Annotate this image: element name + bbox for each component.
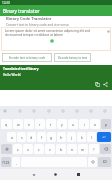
staticText: n (71, 147, 74, 152)
staticText: 12:30 (2, 1, 10, 5)
button[interactable]: tool5 (73, 107, 81, 115)
button[interactable]: tool1 (16, 107, 24, 115)
button[interactable]: Decode binary to text (54, 53, 91, 62)
button[interactable]: c (34, 144, 44, 154)
button[interactable]: l (87, 132, 96, 142)
staticText: d (30, 135, 33, 140)
button[interactable] (1, 144, 12, 154)
button[interactable]: tool6 (87, 107, 95, 115)
staticText: q (5, 122, 8, 127)
button[interactable]: p (101, 119, 111, 129)
button[interactable]: ? (89, 144, 99, 154)
button[interactable]: o (90, 119, 100, 129)
staticText: u (72, 122, 75, 127)
button[interactable]: i (79, 119, 89, 129)
button[interactable]: s (17, 132, 26, 142)
button[interactable]: tool3 (45, 107, 53, 115)
staticText: w (17, 122, 20, 127)
button[interactable]: , (12, 157, 20, 167)
staticText: Encode text to binary code (9, 56, 46, 60)
staticText: r (39, 122, 41, 127)
button[interactable]: v (45, 144, 55, 154)
button[interactable]: y (57, 119, 67, 129)
staticText: , (16, 160, 17, 165)
button[interactable]: Encode text to binary code (2, 53, 52, 62)
button[interactable]: Share (102, 81, 108, 87)
button[interactable]: Recents (73, 169, 84, 180)
button[interactable]: tool7 (101, 107, 109, 115)
button[interactable]: a (7, 132, 16, 142)
staticText: m (81, 147, 85, 152)
staticText: Hello World (3, 73, 21, 77)
button[interactable]: f (37, 132, 46, 142)
button[interactable]: g (47, 132, 56, 142)
button[interactable]: e (24, 119, 34, 129)
button[interactable]: d (27, 132, 36, 142)
button[interactable]: tool2 (30, 107, 38, 115)
button[interactable]: j (67, 132, 76, 142)
button[interactable]: Copy (94, 81, 100, 87)
staticText: g (50, 135, 53, 140)
staticText: p (105, 122, 108, 127)
staticText: Binary Code Translator (6, 16, 52, 22)
staticText: a (11, 135, 13, 140)
button[interactable]: Home (50, 169, 61, 180)
staticText: x (27, 147, 29, 152)
button[interactable]: n (67, 144, 77, 154)
button[interactable]: u (68, 119, 78, 129)
button[interactable]: h (57, 132, 66, 142)
staticText: h (60, 135, 63, 140)
staticText: Lorem ipsum dolor sit amet consectetur a… (5, 29, 90, 37)
button[interactable]: m (78, 144, 88, 154)
button[interactable] (88, 157, 97, 167)
staticText: ?123 (2, 160, 10, 165)
staticText: j (71, 135, 72, 140)
button[interactable] (98, 157, 111, 167)
button[interactable]: Lorem ipsum dolor sit amet consectetur a… (1, 27, 111, 51)
button[interactable]: r (35, 119, 45, 129)
button[interactable]: tool0 (1, 107, 9, 115)
button[interactable]: x (23, 144, 33, 154)
staticText: Translated text/binary (3, 67, 39, 71)
staticText: e (28, 122, 30, 127)
button[interactable]: t (46, 119, 56, 129)
staticText: ? (93, 147, 95, 152)
button[interactable] (97, 132, 111, 142)
button[interactable]: q (1, 119, 12, 129)
staticText: b (60, 147, 63, 152)
staticText: v (49, 147, 51, 152)
staticText: Convert text to binary code and vice ver… (6, 23, 69, 27)
button[interactable]: Back (28, 169, 39, 180)
button[interactable]: k (77, 132, 86, 142)
staticText: l (91, 135, 92, 140)
button[interactable] (100, 144, 111, 154)
staticText: c (38, 147, 40, 152)
staticText: y (61, 122, 63, 127)
button[interactable]: z (13, 144, 22, 154)
staticText: Decode binary to text (58, 56, 88, 60)
staticText: Binary translator (3, 8, 40, 14)
button[interactable]: ?123 (1, 157, 11, 167)
staticText: z (17, 147, 19, 152)
staticText: i (84, 122, 85, 127)
staticText: k (81, 135, 83, 140)
staticText: o (94, 122, 97, 127)
staticText: f (41, 135, 43, 140)
staticText: s (21, 135, 23, 140)
button[interactable]: tool4 (59, 107, 67, 115)
button[interactable]: w (13, 119, 23, 129)
button[interactable]: b (56, 144, 66, 154)
staticText: t (50, 122, 52, 127)
